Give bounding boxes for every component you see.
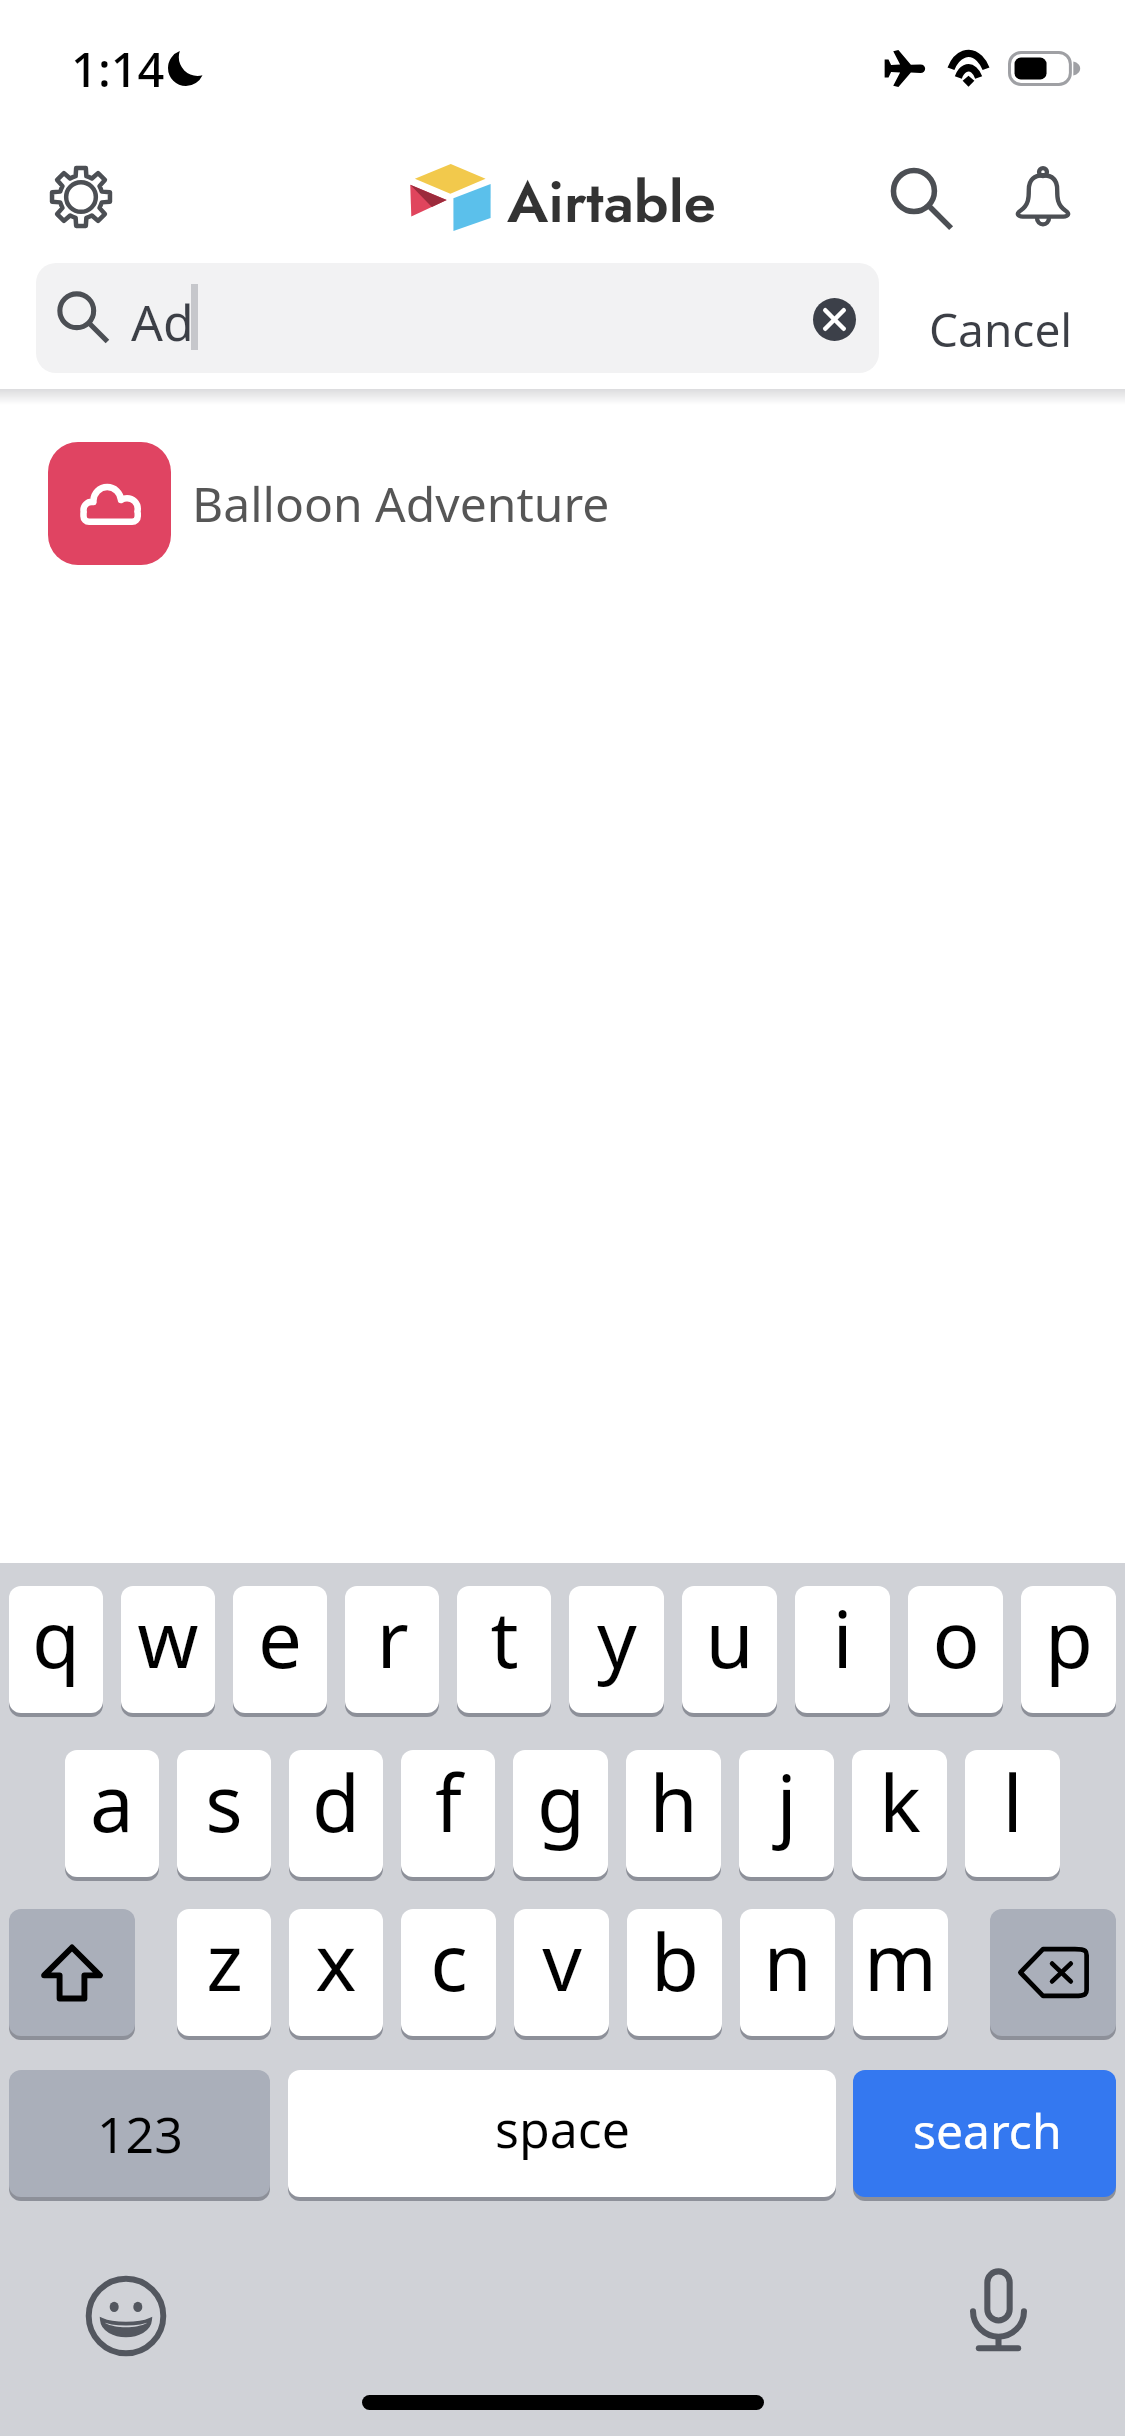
button[interactable]: Notifications: [996, 150, 1090, 246]
button[interactable]: v: [514, 1909, 609, 2036]
staticText: h: [649, 1750, 698, 1855]
staticText: k: [879, 1750, 921, 1855]
button[interactable]: Settings: [32, 148, 129, 245]
staticText: Balloon Adventure: [192, 471, 610, 536]
button[interactable]: p: [1021, 1586, 1116, 1713]
button[interactable]: x: [289, 1909, 383, 2036]
button[interactable]: w: [121, 1586, 215, 1713]
button[interactable]: Ad: [36, 263, 879, 373]
button[interactable]: t: [457, 1586, 551, 1713]
staticText: o: [932, 1586, 980, 1691]
button[interactable]: k: [852, 1750, 947, 1877]
staticText: search: [913, 2098, 1062, 2163]
staticText: q: [32, 1586, 80, 1691]
staticText: c: [430, 1909, 468, 2014]
button[interactable]: m: [853, 1909, 948, 2036]
button[interactable]: search: [853, 2070, 1116, 2197]
staticText: v: [542, 1909, 582, 2014]
button[interactable]: Shift: [9, 1909, 135, 2036]
button[interactable]: d: [289, 1750, 383, 1877]
button[interactable]: Balloon Adventure: [0, 405, 1125, 620]
button[interactable]: n: [740, 1909, 835, 2036]
staticText: m: [864, 1909, 937, 2014]
button[interactable]: s: [177, 1750, 271, 1877]
staticText: 1:14: [71, 37, 165, 101]
button[interactable]: [900, 263, 1098, 373]
button[interactable]: y: [569, 1586, 664, 1713]
staticText: b: [651, 1909, 699, 2014]
staticText: y: [597, 1586, 637, 1691]
button[interactable]: l: [965, 1750, 1060, 1877]
button[interactable]: f: [401, 1750, 495, 1877]
staticText: x: [315, 1909, 357, 2014]
button[interactable]: h: [626, 1750, 721, 1877]
staticText: j: [776, 1750, 797, 1855]
staticText: w: [137, 1586, 199, 1691]
staticText: e: [258, 1586, 302, 1691]
staticText: d: [312, 1750, 360, 1855]
staticText: r: [376, 1586, 409, 1691]
button[interactable]: j: [739, 1750, 834, 1877]
staticText: z: [206, 1909, 243, 2014]
staticText: n: [763, 1909, 812, 2014]
button[interactable]: g: [513, 1750, 608, 1877]
button[interactable]: Clear text: [798, 283, 870, 355]
button[interactable]: u: [682, 1586, 777, 1713]
staticText: f: [435, 1750, 462, 1855]
button[interactable]: 123: [9, 2070, 270, 2197]
button[interactable]: c: [401, 1909, 496, 2036]
staticText: a: [90, 1750, 134, 1855]
staticText: Ad: [131, 288, 194, 356]
button[interactable]: r: [345, 1586, 439, 1713]
staticText: space: [495, 2095, 630, 2163]
button[interactable]: space: [288, 2070, 836, 2197]
button[interactable]: i: [795, 1586, 890, 1713]
staticText: p: [1045, 1586, 1093, 1691]
button[interactable]: e: [233, 1586, 327, 1713]
button[interactable]: a: [65, 1750, 159, 1877]
button[interactable]: q: [9, 1586, 103, 1713]
button[interactable]: b: [627, 1909, 722, 2036]
staticText: t: [490, 1586, 519, 1691]
staticText: Airtable: [507, 160, 716, 244]
staticText: g: [537, 1750, 585, 1855]
button[interactable]: o: [908, 1586, 1003, 1713]
staticText: s: [205, 1750, 243, 1855]
staticText: i: [832, 1586, 853, 1691]
staticText: l: [1002, 1750, 1023, 1855]
staticText: Cancel: [929, 298, 1073, 361]
button[interactable]: Emoji keyboard: [85, 2275, 167, 2357]
staticText: 123: [97, 2100, 183, 2168]
staticText: u: [705, 1586, 754, 1691]
button[interactable]: Voice input: [958, 2266, 1038, 2354]
button[interactable]: z: [177, 1909, 271, 2036]
button[interactable]: Search: [874, 151, 969, 246]
button[interactable]: Backspace: [990, 1909, 1116, 2036]
